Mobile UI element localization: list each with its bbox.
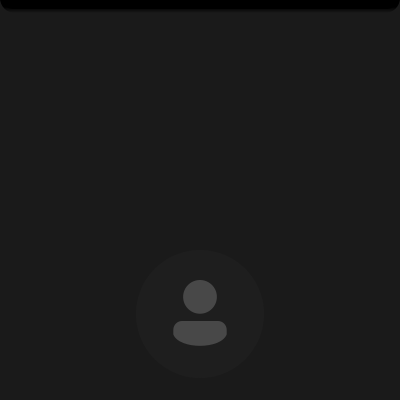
button[interactable]: Profile — [136, 250, 264, 378]
